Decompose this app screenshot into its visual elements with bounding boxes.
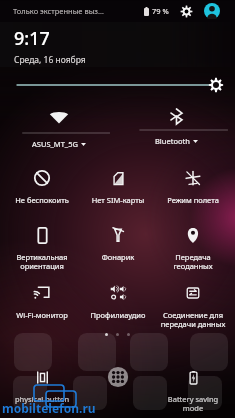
- staticText: Вертикальная ориентация: [6, 252, 78, 272]
- staticText: 79 %: [152, 6, 169, 16]
- staticText: Только экстренные выз…: [13, 6, 104, 16]
- button[interactable]: User profile: [204, 3, 220, 19]
- button[interactable]: Wi-Fi-монитор: [6, 280, 78, 320]
- button[interactable]: Нет SIM-карты: [82, 165, 154, 205]
- staticText: Среда, 16 ноября: [14, 54, 86, 66]
- staticText: 9:17: [14, 26, 50, 51]
- button[interactable]: Battery saving mode: [157, 364, 229, 414]
- staticText: physical button: [6, 394, 78, 404]
- staticText: Режим полета: [157, 195, 229, 205]
- staticText: Профилиаудио: [82, 310, 154, 320]
- button[interactable]: Wi-Fi: [0, 103, 117, 155]
- button[interactable]: Bluetooth: [117, 103, 235, 155]
- button[interactable]: Фонарик: [82, 222, 154, 262]
- button[interactable]: Соединение для передачи данных: [157, 280, 229, 330]
- staticText: Не беспокоить: [6, 195, 78, 205]
- button[interactable]: Brightness: [0, 67, 235, 103]
- staticText: Нет SIM-карты: [82, 195, 154, 205]
- staticText: ASUS_MT_5G: [32, 139, 78, 149]
- staticText: Фонарик: [82, 252, 154, 262]
- staticText: Battery saving mode: [157, 394, 229, 414]
- button[interactable]: Передача геоданных: [157, 222, 229, 272]
- staticText: Соединение для передачи данных: [157, 310, 229, 330]
- button[interactable]: Settings: [180, 5, 193, 18]
- staticText: [82, 394, 154, 404]
- staticText: Wi-Fi-монитор: [6, 310, 78, 320]
- button[interactable]: Режим полета: [157, 165, 229, 205]
- button[interactable]: Профилиаудио: [82, 280, 154, 320]
- button[interactable]: [82, 364, 154, 404]
- staticText: mobiltelefon.ru: [2, 400, 96, 416]
- button[interactable]: Не беспокоить: [6, 165, 78, 205]
- staticText: Передача геоданных: [157, 252, 229, 272]
- button[interactable]: physical button: [6, 364, 78, 404]
- staticText: Bluetooth: [155, 136, 190, 146]
- button[interactable]: Вертикальная ориентация: [6, 222, 78, 272]
